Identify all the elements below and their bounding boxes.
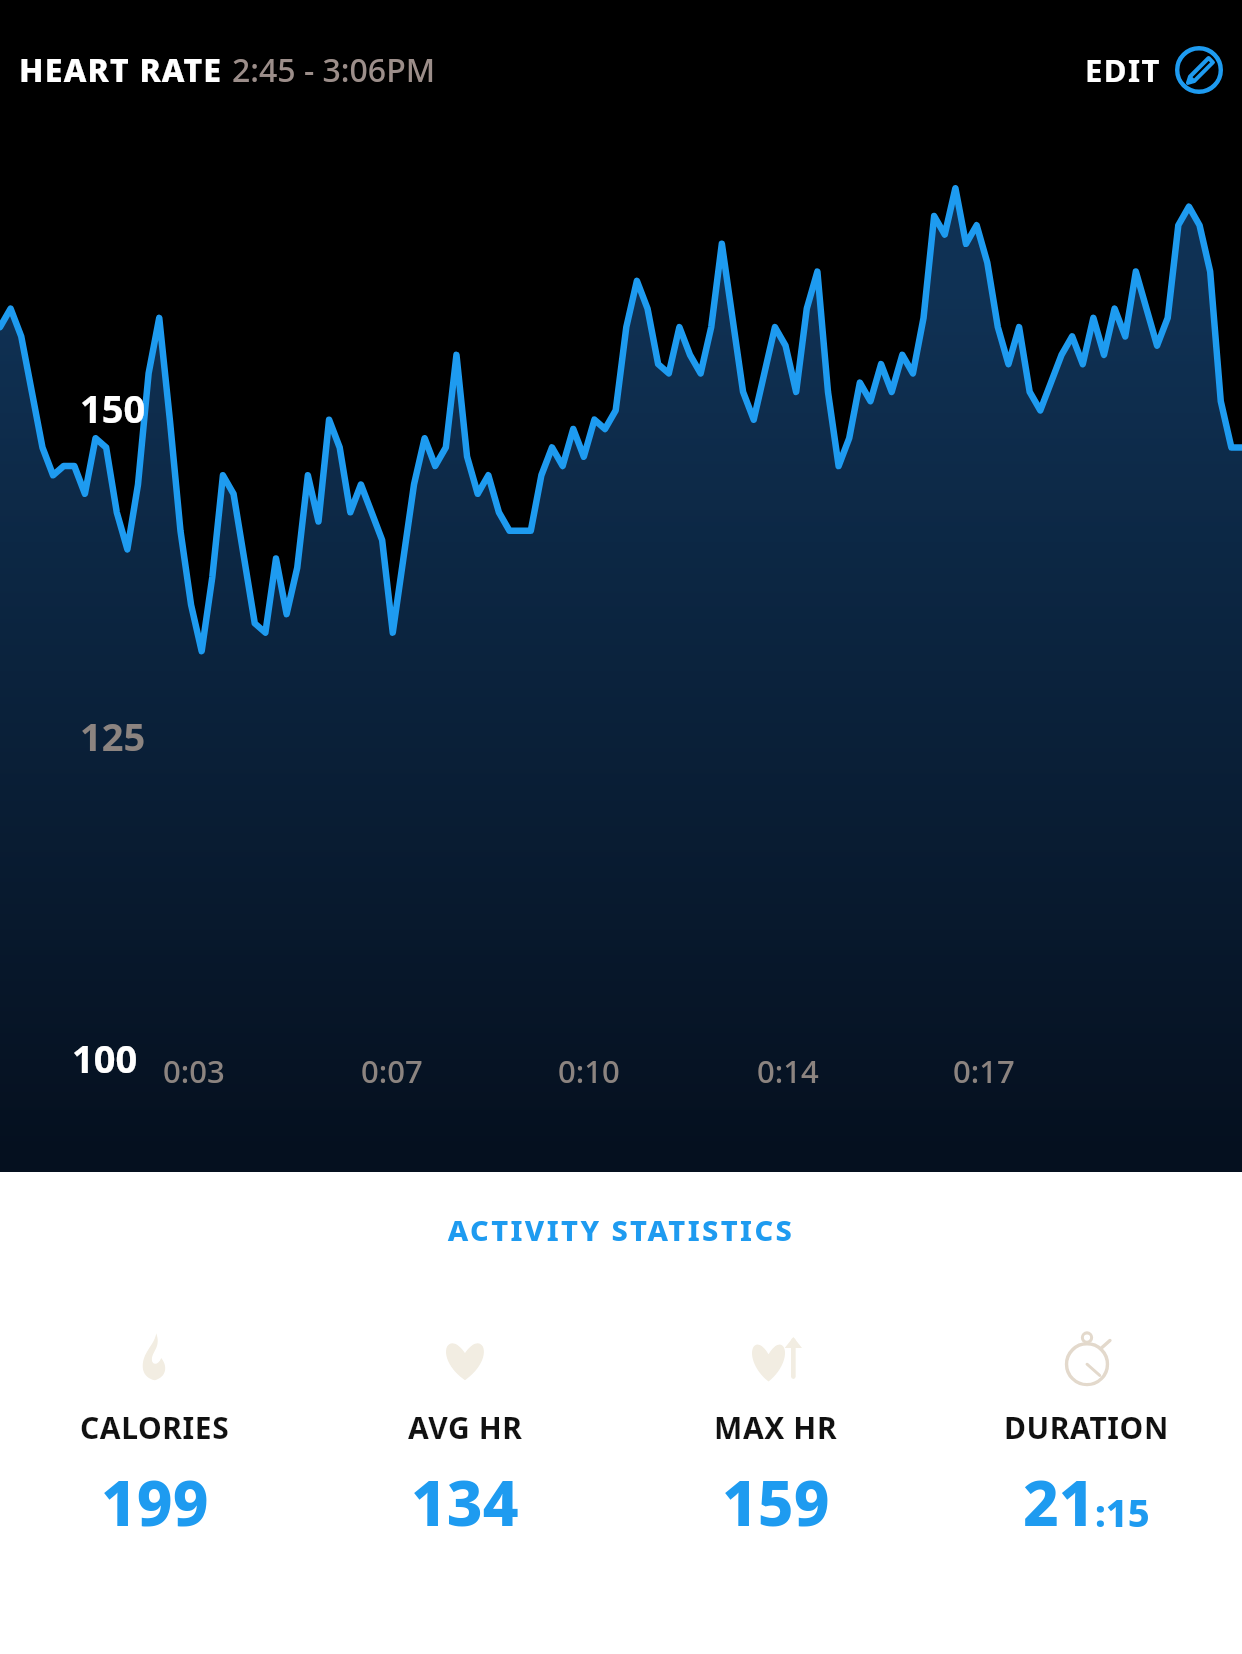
staticText: EDIT (1085, 49, 1161, 91)
staticText: ACTIVITY STATISTICS (0, 1210, 1242, 1249)
staticText: DURATION (1004, 1407, 1169, 1448)
staticText: AVG HR (408, 1407, 523, 1448)
other: Edit (1175, 46, 1223, 94)
staticText: 0:17 (953, 1050, 1015, 1092)
button[interactable]: CALORIES (0, 1327, 310, 1544)
staticText: 150 (80, 382, 146, 434)
button[interactable]: MAX HR (620, 1327, 931, 1544)
button[interactable]: DURATION (931, 1327, 1242, 1544)
staticText: HEART RATE (19, 48, 223, 92)
staticText: 134 (411, 1460, 519, 1544)
staticText: 2:45 - 3:06PM (232, 48, 436, 92)
staticText: 159 (722, 1460, 830, 1544)
staticText: 199 (101, 1460, 209, 1544)
staticText: MAX HR (714, 1407, 838, 1448)
staticText: 100 (72, 1032, 138, 1084)
staticText: 0:03 (163, 1050, 225, 1092)
staticText: :15 (1095, 1486, 1150, 1538)
staticText: CALORIES (80, 1407, 230, 1448)
staticText: 0:14 (757, 1050, 819, 1092)
staticText: 0:10 (558, 1050, 620, 1092)
staticText: 0:07 (361, 1050, 423, 1092)
button[interactable]: EDIT (1085, 46, 1223, 94)
button[interactable]: AVG HR (310, 1327, 620, 1544)
staticText: 21 (1023, 1460, 1095, 1544)
staticText: 125 (80, 710, 146, 762)
